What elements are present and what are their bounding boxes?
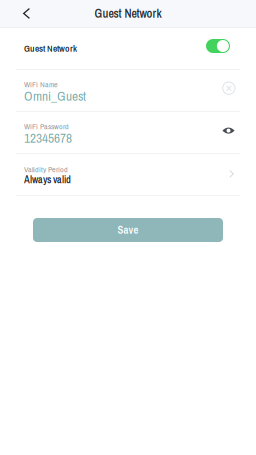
staticText: Guest Network <box>94 5 161 22</box>
staticText: Save <box>117 223 138 237</box>
button[interactable]: Show password <box>222 126 235 135</box>
staticText: WiFi Password <box>24 121 69 132</box>
button[interactable]: Guest Network <box>206 39 230 53</box>
staticText: Guest Network <box>24 42 77 55</box>
staticText: 12345678 <box>24 129 72 147</box>
button[interactable]: Clear WiFi name <box>223 82 235 94</box>
staticText: Validity Period <box>24 164 68 175</box>
button[interactable]: Back <box>0 0 52 27</box>
button[interactable]: Validity Period <box>0 154 256 195</box>
staticText: Omni_Guest <box>24 87 86 105</box>
staticText: WiFi Name <box>24 79 58 90</box>
button[interactable]: Save <box>33 218 223 242</box>
staticText: Always valid <box>24 173 71 186</box>
